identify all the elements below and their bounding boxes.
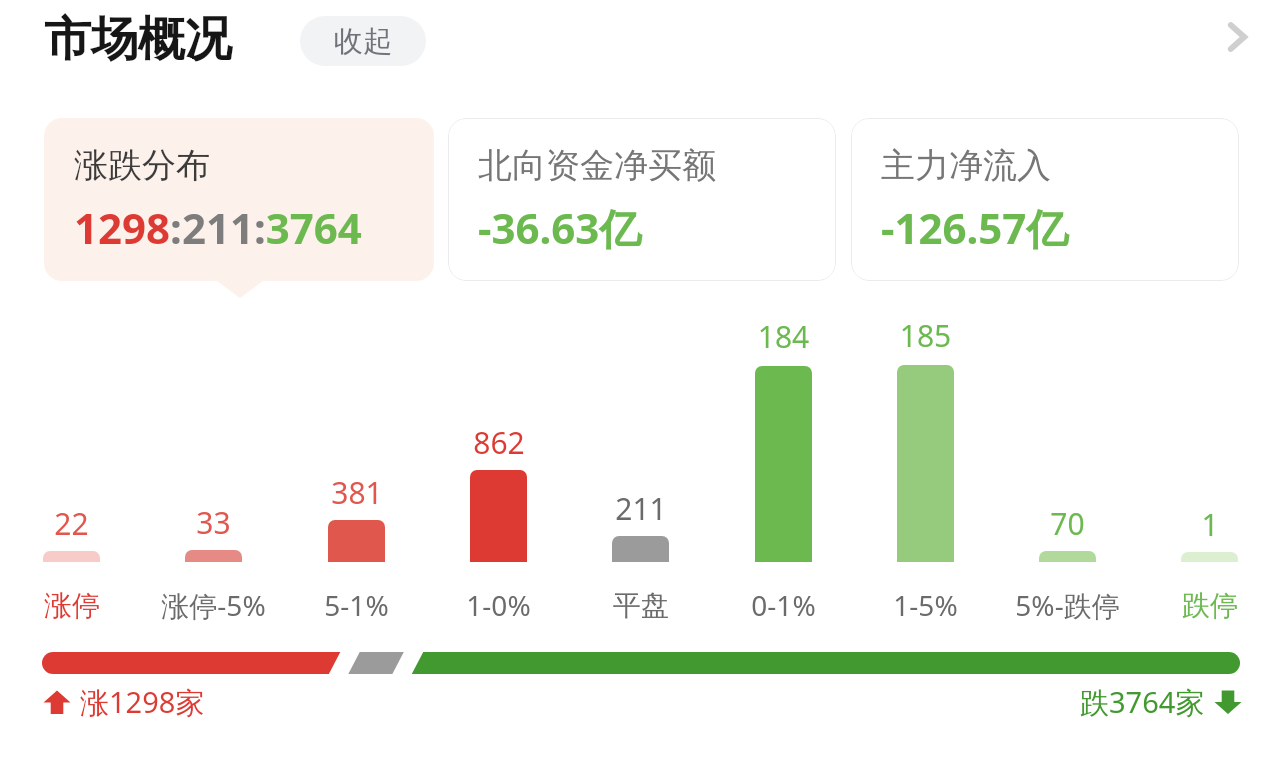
staticText: 北向资金净买额 — [478, 144, 716, 187]
button[interactable]: 5-1% 381 — [328, 520, 385, 562]
staticText: 862 — [473, 422, 525, 463]
staticText: 主力净流入 — [881, 144, 1051, 187]
staticText: 市场概况 — [44, 10, 232, 69]
button[interactable]: 涨停 22 — [43, 551, 100, 562]
staticText: 22 — [54, 503, 89, 544]
button[interactable]: 1-0% 862 — [470, 470, 527, 562]
button[interactable]: 跌停 1 — [1181, 552, 1238, 562]
button[interactable]: 0-1% 1842 — [755, 366, 812, 562]
button[interactable]: 市场概况 — [40, 6, 236, 73]
button[interactable]: 涨停-5% 33 — [185, 550, 242, 562]
staticText: 5%-跌停 — [1015, 586, 1120, 624]
button[interactable]: Up down distribution bar — [42, 652, 1240, 674]
staticText: 涨停 — [44, 588, 100, 623]
button[interactable]: Up — [42, 682, 205, 722]
staticText: 涨跌分布 — [74, 144, 210, 187]
button[interactable]: 跌3764家 — [1080, 682, 1243, 722]
button[interactable]: 主力净流入 — [851, 118, 1239, 281]
button[interactable]: 收起 — [300, 16, 426, 66]
button[interactable]: Expand — [1208, 8, 1266, 66]
staticText: 涨停-5% — [161, 586, 266, 624]
staticText: 1842 — [755, 316, 812, 360]
other: Up — [42, 687, 72, 717]
staticText: 0-1% — [751, 586, 816, 624]
staticText: 平盘 — [613, 588, 669, 623]
staticText: 5-1% — [324, 586, 389, 624]
staticText: 1 — [1201, 504, 1219, 545]
other: Down — [1213, 687, 1243, 717]
button[interactable]: 1-5% 1851 — [897, 365, 954, 562]
staticText: 1-5% — [893, 586, 958, 624]
staticText: 1298:211:3764 — [74, 199, 362, 256]
staticText: 跌停 — [1182, 588, 1238, 623]
staticText: 1-0% — [466, 586, 531, 624]
button[interactable]: 平盘 211 — [612, 536, 669, 562]
staticText: 211 — [615, 488, 667, 529]
staticText: -36.63亿 — [478, 199, 642, 256]
staticText: 381 — [331, 472, 383, 513]
staticText: 70 — [1050, 503, 1085, 544]
button[interactable]: 北向资金净买额 — [448, 118, 836, 281]
button[interactable]: 5%-跌停 70 — [1039, 551, 1096, 562]
staticText: 33 — [196, 502, 231, 543]
staticText: 1851 — [897, 315, 954, 359]
staticText: -126.57亿 — [881, 199, 1069, 256]
staticText: 跌3764家 — [1080, 682, 1205, 722]
staticText: 涨1298家 — [80, 682, 205, 722]
button[interactable]: 涨跌分布 — [44, 118, 434, 281]
staticText: 收起 — [334, 23, 392, 60]
